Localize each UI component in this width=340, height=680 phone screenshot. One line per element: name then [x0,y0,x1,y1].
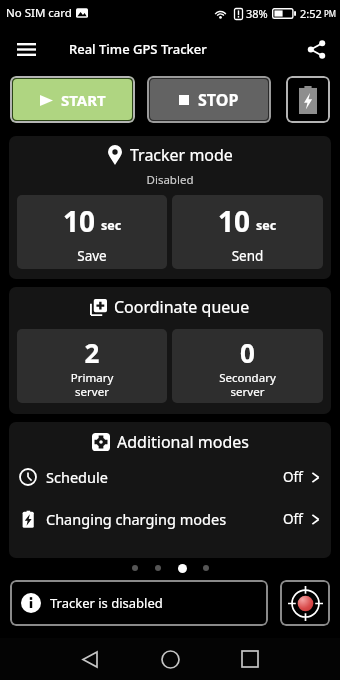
button[interactable]: Back [72,641,108,677]
button[interactable]: Recent apps [232,641,268,677]
button[interactable]: Locate on map [280,580,330,626]
staticText: Primary [17,370,167,386]
button[interactable]: 2 [17,329,167,403]
button[interactable]: Schedule [9,461,331,493]
staticText: PM [324,8,337,19]
button[interactable]: Open navigation menu [8,31,44,67]
staticText: Save [17,247,167,265]
button[interactable]: Tracker is disabled [10,580,268,626]
staticText: Additional modes [117,431,249,453]
button[interactable]: Charging mode [286,76,330,123]
staticText: server [17,384,167,400]
staticText: sec [101,217,122,234]
staticText: Tracker is disabled [50,594,163,612]
staticText: 2 [17,335,167,370]
button[interactable]: START [13,79,132,120]
staticText: 0 [172,335,323,370]
staticText: Coordinate queue [114,296,250,318]
staticText: Changing charging modes [46,509,227,529]
button[interactable]: Home [152,641,188,677]
button[interactable]: 10 [17,195,167,269]
staticText: 10 [63,202,96,240]
staticText: Real Time GPS Tracker [69,40,207,58]
button[interactable]: Changing charging modes [9,503,331,535]
staticText: sec [256,217,277,234]
staticText: Disabled [9,172,331,188]
staticText: Off [283,510,303,528]
staticText: server [172,384,323,400]
staticText: Tracker mode [130,144,233,166]
staticText: Off [283,468,303,486]
button[interactable]: Share [298,31,334,67]
button[interactable]: STOP [150,79,268,120]
staticText: Send [172,247,323,265]
staticText: 38% [246,6,268,21]
button[interactable]: 10 [172,195,323,269]
staticText: START [61,90,106,110]
staticText: 10 [218,202,251,240]
staticText: STOP [198,89,239,111]
staticText: Schedule [46,467,108,487]
staticText: No SIM card [6,5,72,21]
staticText: Secondary [172,370,323,386]
staticText: 2:52 [300,6,322,21]
button[interactable]: 0 [172,329,323,403]
